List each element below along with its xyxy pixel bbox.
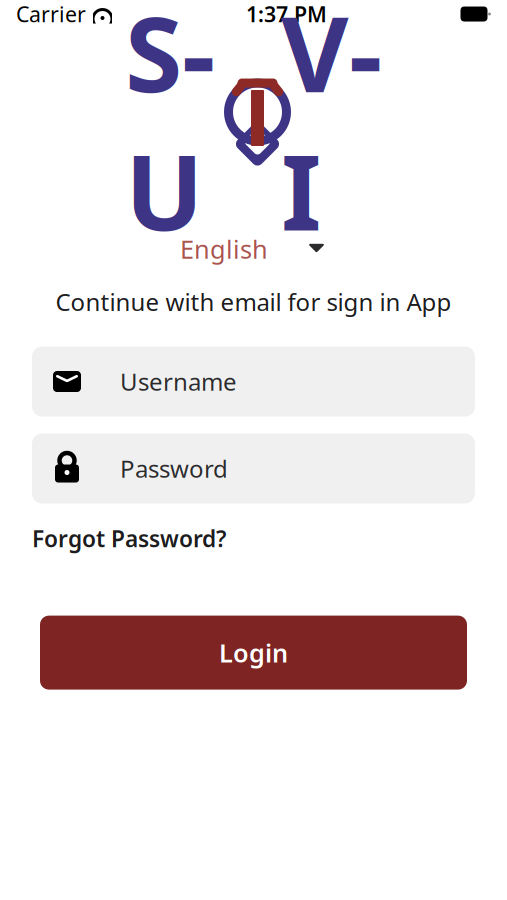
staticText: Login (219, 636, 288, 669)
staticText: VI (281, 0, 382, 259)
staticText: Carrier (16, 0, 86, 28)
button[interactable]: English (174, 224, 333, 274)
button[interactable]: Username (32, 346, 475, 416)
button[interactable]: Password (32, 433, 475, 503)
staticText: Password (120, 453, 228, 484)
staticText: English (180, 232, 268, 266)
button[interactable]: Login (40, 616, 467, 690)
staticText: Username (120, 366, 237, 397)
staticText: Forgot Password? (32, 523, 226, 554)
staticText: Continue with email for sign in App (55, 286, 451, 317)
button[interactable]: Forgot Password? (32, 519, 226, 558)
staticText: SU (125, 0, 215, 259)
staticText: 1:37 PM (246, 0, 327, 28)
